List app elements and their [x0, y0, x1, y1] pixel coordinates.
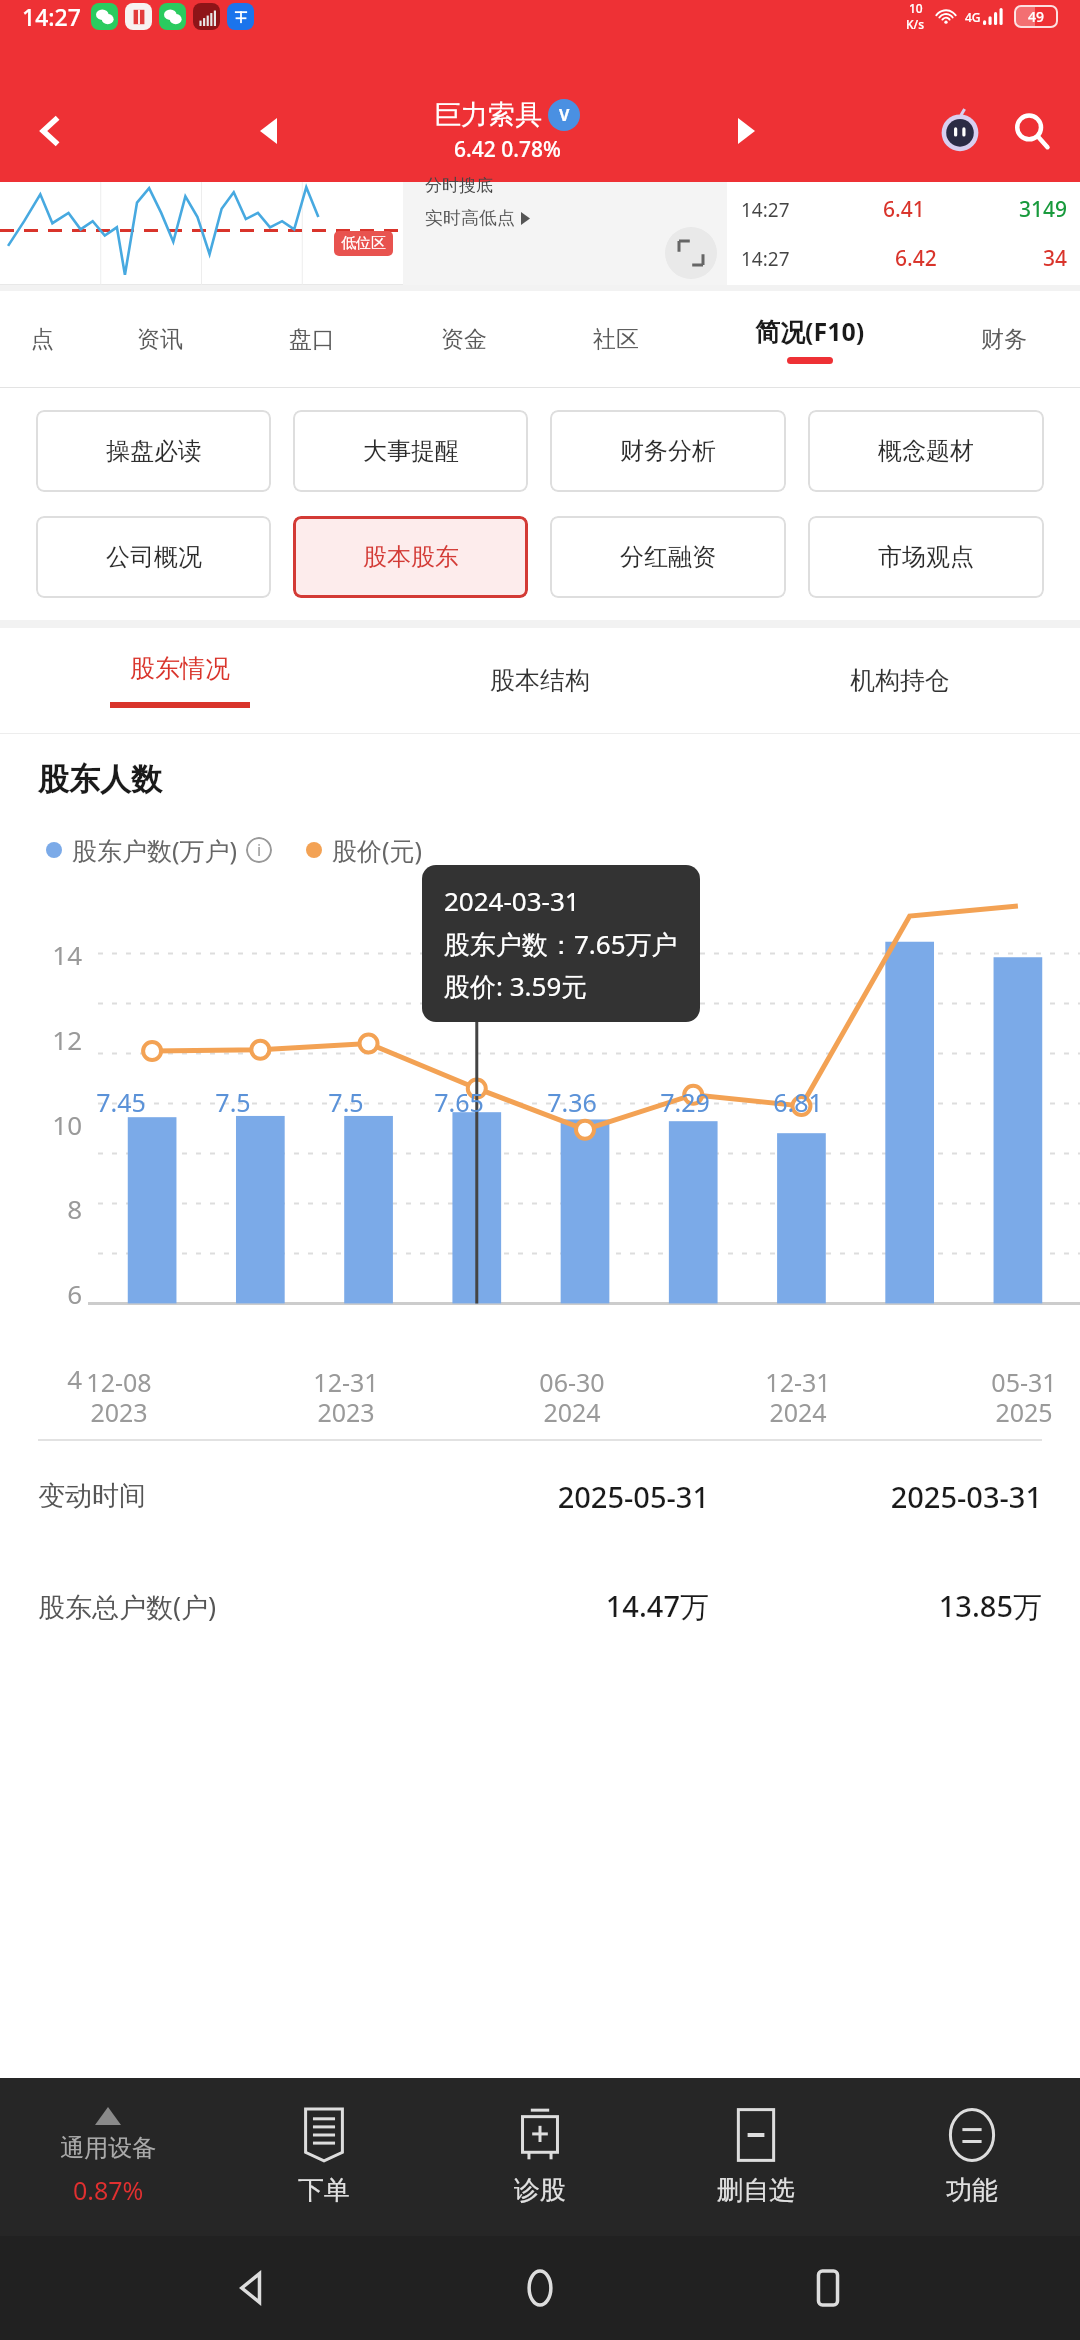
- button[interactable]: 删自选: [648, 2078, 864, 2236]
- staticText: 低位区: [341, 234, 386, 253]
- button[interactable]: 点: [0, 291, 84, 387]
- staticText: 7.65: [434, 1085, 484, 1119]
- staticText: 06-30 2024: [539, 1365, 605, 1429]
- button[interactable]: Back: [20, 100, 82, 162]
- staticText: 2024-03-31: [444, 883, 580, 918]
- staticText: 8: [67, 1191, 82, 1226]
- button[interactable]: 股本股东: [293, 516, 528, 598]
- staticText: 05-31 2025: [991, 1365, 1057, 1429]
- staticText: 实时高低点: [425, 207, 515, 230]
- button[interactable]: 分红融资: [550, 516, 786, 598]
- button[interactable]: Home: [504, 2252, 576, 2324]
- staticText: 机构持仓: [850, 665, 950, 696]
- staticText: 变动时间: [38, 1479, 390, 1513]
- staticText: 股东户数：7.65万户: [444, 926, 678, 962]
- button[interactable]: 变动时间: [38, 1441, 1042, 1551]
- staticText: 6.42: [895, 244, 937, 273]
- staticText: 股东人数: [38, 760, 162, 799]
- staticText: 3149: [1019, 195, 1068, 224]
- staticText: 股东情况: [130, 653, 230, 684]
- button[interactable]: 通用设备: [0, 2078, 216, 2236]
- staticText: 功能: [946, 2174, 998, 2207]
- staticText: 13.85万: [723, 1586, 1042, 1626]
- staticText: 6.81: [773, 1085, 823, 1119]
- button[interactable]: 概念题材: [808, 410, 1044, 492]
- staticText: 点: [31, 325, 54, 354]
- staticText: 14.47万: [390, 1586, 709, 1626]
- button[interactable]: 实时高低点: [425, 207, 530, 230]
- staticText: 诊股: [514, 2174, 566, 2207]
- staticText: 股东总户数(户): [38, 1588, 390, 1625]
- staticText: 12-31 2024: [765, 1365, 831, 1429]
- button[interactable]: 股本结构: [360, 628, 720, 733]
- staticText: 10: [909, 0, 923, 16]
- button[interactable]: 盘口: [236, 291, 388, 387]
- staticText: K/s: [906, 16, 925, 32]
- staticText: 股东户数(万户): [72, 833, 238, 867]
- staticText: 10: [52, 1107, 82, 1142]
- staticText: 49: [1028, 7, 1045, 26]
- button[interactable]: 巨力索具: [434, 98, 580, 164]
- button[interactable]: Assistant: [932, 103, 988, 159]
- button[interactable]: 大事提醒: [293, 410, 528, 492]
- button[interactable]: 社区: [540, 291, 692, 387]
- staticText: 14:27: [22, 1, 81, 32]
- staticText: 股本股东: [363, 542, 459, 572]
- button[interactable]: 股东总户数(户): [38, 1551, 1042, 1661]
- staticText: 资金: [441, 325, 487, 354]
- button[interactable]: 市场观点: [808, 516, 1044, 598]
- staticText: 2025-03-31: [723, 1477, 1042, 1516]
- staticText: 6.42 0.78%: [454, 135, 561, 164]
- button[interactable]: Next stock: [722, 107, 770, 155]
- button[interactable]: 财务: [928, 291, 1080, 387]
- staticText: 大事提醒: [363, 436, 459, 466]
- staticText: 12-08 2023: [86, 1365, 152, 1429]
- button[interactable]: Back: [216, 2252, 288, 2324]
- staticText: 盘口: [289, 325, 335, 354]
- staticText: 删自选: [717, 2174, 795, 2207]
- button[interactable]: 资讯: [84, 291, 236, 387]
- staticText: 下单: [298, 2174, 350, 2207]
- button[interactable]: 公司概况: [36, 516, 271, 598]
- staticText: 资讯: [137, 325, 183, 354]
- staticText: 股本结构: [490, 665, 590, 696]
- button[interactable]: 诊股: [432, 2078, 648, 2236]
- button[interactable]: Previous stock: [244, 107, 292, 155]
- staticText: i: [257, 839, 262, 861]
- button[interactable]: Recents: [792, 2252, 864, 2324]
- button[interactable]: Info: [246, 837, 272, 863]
- staticText: 股价(元): [332, 833, 423, 867]
- button[interactable]: 财务分析: [550, 410, 786, 492]
- staticText: 7.5: [215, 1085, 251, 1119]
- button[interactable]: Search: [1004, 103, 1060, 159]
- staticText: 14:27: [741, 246, 790, 272]
- staticText: 简况(F10): [755, 314, 865, 348]
- staticText: 分时搜底: [425, 175, 493, 196]
- button[interactable]: Fullscreen: [665, 227, 717, 279]
- staticText: 财务分析: [620, 436, 716, 466]
- staticText: 操盘必读: [106, 436, 202, 466]
- staticText: 7.45: [96, 1085, 146, 1119]
- staticText: 公司概况: [106, 542, 202, 572]
- button[interactable]: 机构持仓: [720, 628, 1080, 733]
- staticText: 2025-05-31: [390, 1477, 709, 1516]
- button[interactable]: 资金: [388, 291, 540, 387]
- staticText: 6: [67, 1276, 82, 1311]
- button[interactable]: 操盘必读: [36, 410, 271, 492]
- staticText: 14:27: [741, 197, 790, 223]
- button[interactable]: 低位区: [0, 182, 403, 285]
- button[interactable]: 股东情况: [0, 628, 360, 733]
- staticText: 0.87%: [73, 2173, 144, 2207]
- button[interactable]: 下单: [216, 2078, 432, 2236]
- button[interactable]: 功能: [864, 2078, 1080, 2236]
- staticText: 14: [52, 937, 82, 972]
- staticText: 社区: [593, 325, 639, 354]
- staticText: 财务: [981, 325, 1027, 354]
- staticText: 分红融资: [620, 542, 716, 572]
- button[interactable]: 简况(F10): [692, 291, 928, 387]
- staticText: 通用设备: [60, 2133, 156, 2163]
- staticText: 12-31 2023: [313, 1365, 379, 1429]
- staticText: 6.41: [883, 195, 925, 224]
- staticText: 市场观点: [878, 542, 974, 572]
